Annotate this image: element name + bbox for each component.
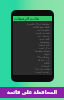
staticText: المحافظة على قائمة الوصفات — [0, 89, 64, 96]
button[interactable]: سلطة دجاج بالخضار — [13, 22, 52, 25]
button[interactable]: كبة مقلية — [13, 43, 52, 46]
button[interactable]: عصير ليمون — [13, 70, 52, 73]
staticText: عصير ليمون — [35, 70, 50, 73]
staticText: معمول تمر — [37, 34, 50, 37]
button[interactable]: كيكة شوكولاتة — [13, 25, 52, 28]
button[interactable]: مقلوبة لحم — [13, 28, 52, 31]
button[interactable]: كنافة — [13, 61, 52, 64]
button[interactable]: فتة حمص — [13, 37, 52, 40]
staticText: تبولة — [44, 52, 50, 55]
staticText: سمك مشوي — [35, 49, 50, 52]
button[interactable]: تبولة — [13, 52, 52, 55]
button[interactable]: شوربة عدس — [13, 31, 52, 34]
button[interactable]: معمول تمر — [13, 34, 52, 37]
staticText: كيكة شوكولاتة — [33, 25, 50, 28]
staticText: شوربة عدس — [35, 31, 50, 34]
button[interactable]: بسبوسة — [13, 40, 52, 43]
button[interactable]: أرز بخاري — [13, 58, 52, 61]
staticText: كبة مقلية — [39, 43, 50, 46]
staticText: شاورما دجاج — [35, 67, 50, 70]
staticText: سلطة دجاج بالخضار — [26, 22, 50, 25]
staticText: مقلوبة لحم — [37, 28, 50, 31]
button[interactable]: لقيمات — [13, 64, 52, 67]
button[interactable]: مندي دجاج — [13, 55, 52, 58]
staticText: مندي دجاج — [37, 55, 50, 58]
staticText: كنافة — [44, 61, 50, 64]
button[interactable]: شاورما دجاج — [13, 67, 52, 70]
staticText: فتة حمص — [38, 37, 50, 40]
staticText: ورق عنب — [39, 46, 50, 49]
staticText: قائمة الوصفات — [14, 16, 39, 21]
button[interactable]: سمك مشوي — [13, 49, 52, 52]
button[interactable]: قائمة الوصفات — [13, 16, 52, 21]
button[interactable]: ورق عنب — [13, 46, 52, 49]
staticText: أرز بخاري — [38, 58, 50, 61]
staticText: بسبوسة — [40, 40, 50, 43]
staticText: لقيمات — [41, 64, 50, 67]
